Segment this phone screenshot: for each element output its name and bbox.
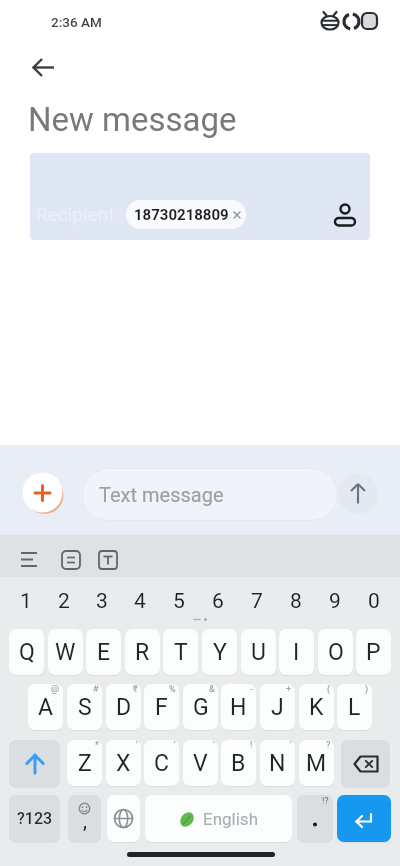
button[interactable]: L — [337, 684, 372, 730]
staticText: T — [174, 639, 188, 666]
staticText: Q — [19, 639, 35, 666]
staticText: H — [230, 694, 247, 721]
staticText: R — [135, 639, 150, 666]
staticText: & — [209, 684, 215, 695]
staticText: * — [95, 740, 99, 751]
staticText: Y — [213, 639, 227, 666]
staticText: @ — [51, 684, 60, 695]
staticText: 4 — [134, 589, 146, 614]
button[interactable]: 2 — [45, 588, 83, 614]
staticText: ! — [250, 740, 253, 751]
staticText: Recipient — [36, 203, 115, 225]
staticText: J — [271, 694, 284, 721]
staticText: Z — [78, 750, 92, 777]
button[interactable]: 6 — [198, 588, 237, 614]
button[interactable] — [337, 795, 391, 842]
button[interactable]: X — [106, 740, 141, 786]
button[interactable]: S — [67, 684, 102, 730]
button[interactable]: G — [183, 684, 218, 730]
button[interactable] — [9, 740, 60, 787]
staticText: ₹ — [133, 684, 138, 695]
button[interactable]: B — [221, 740, 256, 786]
button[interactable]: J — [260, 684, 295, 730]
button[interactable]: W — [48, 629, 83, 675]
button[interactable]: R — [125, 629, 160, 675]
staticText: M — [306, 750, 327, 777]
staticText: X — [116, 750, 131, 777]
staticText: % — [169, 684, 176, 695]
button[interactable] — [341, 740, 390, 787]
button[interactable]: 7 — [237, 588, 276, 614]
staticText: ?123 — [17, 809, 53, 828]
staticText: 5 — [173, 589, 185, 614]
button[interactable]: C — [144, 740, 179, 786]
staticText: K — [309, 694, 324, 721]
button[interactable]: O — [318, 629, 353, 675]
button[interactable]: E — [86, 629, 121, 675]
staticText: 2:36 AM — [51, 14, 102, 30]
button[interactable]: , — [68, 795, 101, 842]
button[interactable]: Q — [9, 629, 44, 675]
button[interactable]: ?123 — [9, 795, 60, 842]
button[interactable] — [22, 48, 66, 88]
button[interactable]: !? — [297, 795, 333, 842]
button[interactable]: V — [183, 740, 218, 786]
staticText: New message — [28, 100, 237, 139]
button[interactable]: English — [145, 795, 292, 842]
staticText: 18730218809 — [134, 206, 229, 224]
staticText: , — [83, 811, 87, 832]
staticText: A — [38, 694, 54, 721]
staticText: 9 — [329, 589, 341, 614]
button[interactable]: 1 — [7, 588, 45, 614]
button[interactable]: T — [163, 629, 198, 675]
button[interactable]: 0 — [354, 588, 393, 614]
button[interactable]: Text message — [82, 468, 338, 521]
button[interactable] — [338, 474, 378, 514]
staticText: 3 — [96, 589, 108, 614]
staticText: ' — [174, 740, 176, 751]
staticText: P — [366, 639, 381, 666]
staticText: S — [78, 694, 92, 721]
button[interactable]: I — [279, 629, 314, 675]
button[interactable]: M — [299, 740, 334, 786]
button[interactable]: P — [356, 629, 391, 675]
staticText: F — [155, 694, 168, 721]
button[interactable]: 18730218809 — [126, 200, 246, 229]
button[interactable]: 5 — [159, 588, 198, 614]
button[interactable]: F — [144, 684, 179, 730]
staticText: Text message — [99, 483, 224, 506]
staticText: L — [348, 694, 361, 721]
button[interactable]: K — [299, 684, 334, 730]
staticText: D — [116, 694, 132, 721]
staticText: 8 — [290, 589, 302, 614]
staticText: ' — [290, 740, 292, 751]
button[interactable]: 4 — [121, 588, 159, 614]
staticText: + — [286, 684, 292, 695]
staticText: 1 — [20, 589, 32, 614]
staticText: E — [97, 639, 111, 666]
button[interactable]: 3 — [83, 588, 121, 614]
button[interactable]: Z — [67, 740, 102, 786]
button[interactable]: Y — [202, 629, 237, 675]
button[interactable]: 9 — [315, 588, 354, 614]
staticText: 7 — [251, 589, 263, 614]
staticText: English — [203, 809, 259, 829]
staticText: # — [93, 684, 99, 695]
button[interactable]: 8 — [276, 588, 315, 614]
button[interactable]: N — [260, 740, 295, 786]
staticText: 6 — [212, 589, 224, 614]
button[interactable]: D — [106, 684, 141, 730]
staticText: ? — [326, 740, 331, 751]
button[interactable] — [332, 198, 358, 232]
button[interactable] — [107, 795, 140, 842]
staticText: 2 — [58, 589, 70, 614]
staticText: ' — [136, 740, 138, 751]
staticText: I — [293, 639, 300, 666]
button[interactable]: H — [221, 684, 256, 730]
button[interactable]: U — [241, 629, 276, 675]
staticText: N — [269, 750, 286, 777]
staticText: 0 — [368, 589, 380, 614]
button[interactable] — [20, 470, 66, 516]
button[interactable]: A — [28, 684, 63, 730]
staticText: B — [231, 750, 246, 777]
